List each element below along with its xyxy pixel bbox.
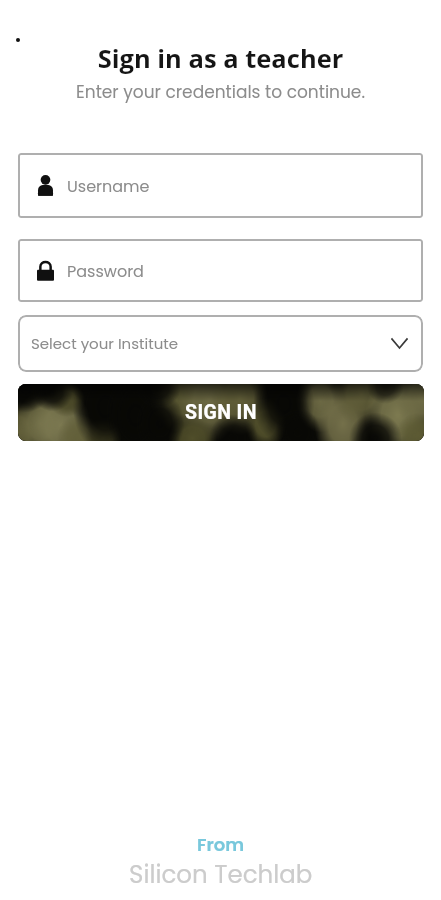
staticText: Enter your credentials to continue. [0, 80, 441, 104]
other: Expand institute list [392, 339, 407, 348]
staticText: Select your Institute [31, 333, 179, 354]
staticText: From [197, 832, 245, 857]
staticText: Sign in as a teacher [0, 41, 441, 76]
button[interactable]: Select your Institute [18, 315, 423, 372]
button[interactable]: Password [18, 239, 423, 302]
staticText: SIGN IN [185, 401, 257, 424]
staticText: Username [67, 175, 150, 197]
staticText: Silicon Techlab [129, 857, 313, 891]
staticText: Password [67, 260, 144, 282]
button[interactable]: SIGN IN [18, 384, 424, 441]
button[interactable]: Username [18, 153, 423, 218]
